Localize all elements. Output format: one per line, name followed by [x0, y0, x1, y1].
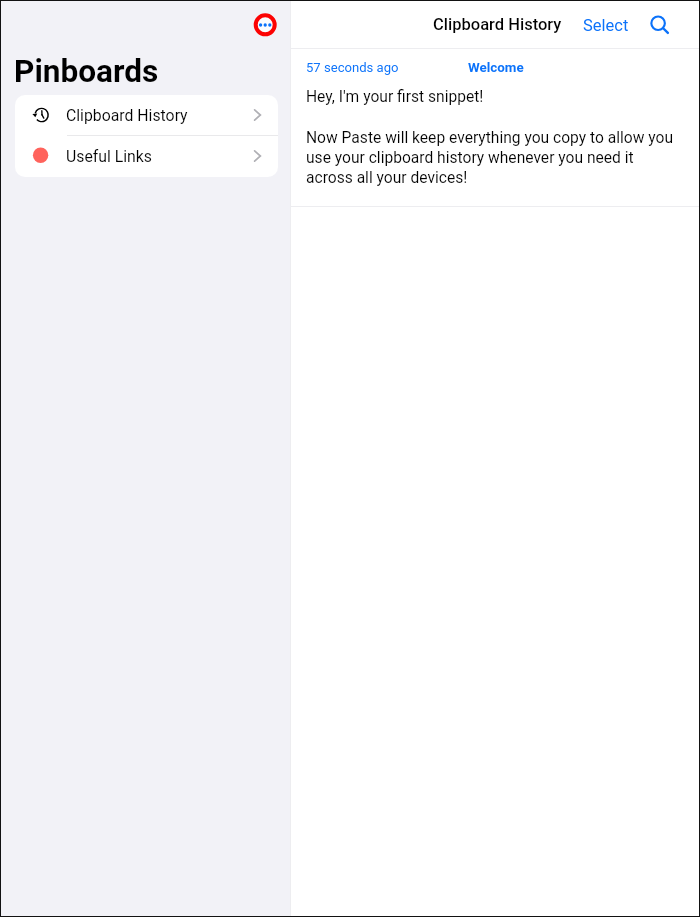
staticText: Hey, I'm your first snippet!: [306, 88, 484, 106]
button[interactable]: Search: [643, 9, 673, 39]
staticText: Select: [583, 16, 629, 35]
staticText: Clipboard History: [66, 106, 188, 125]
staticText: Now Paste will keep everything you copy …: [306, 129, 674, 187]
button[interactable]: Select: [579, 11, 633, 40]
button[interactable]: 57 seconds ago: [291, 49, 699, 206]
staticText: Clipboard History: [433, 15, 562, 34]
button[interactable]: Useful Links: [15, 136, 278, 176]
staticText: Welcome: [468, 60, 524, 76]
staticText: 57 seconds ago: [306, 60, 399, 75]
button[interactable]: Clipboard History: [15, 95, 278, 135]
staticText: Pinboards: [14, 53, 159, 90]
staticText: Useful Links: [66, 147, 152, 166]
button[interactable]: More options: [252, 12, 279, 39]
